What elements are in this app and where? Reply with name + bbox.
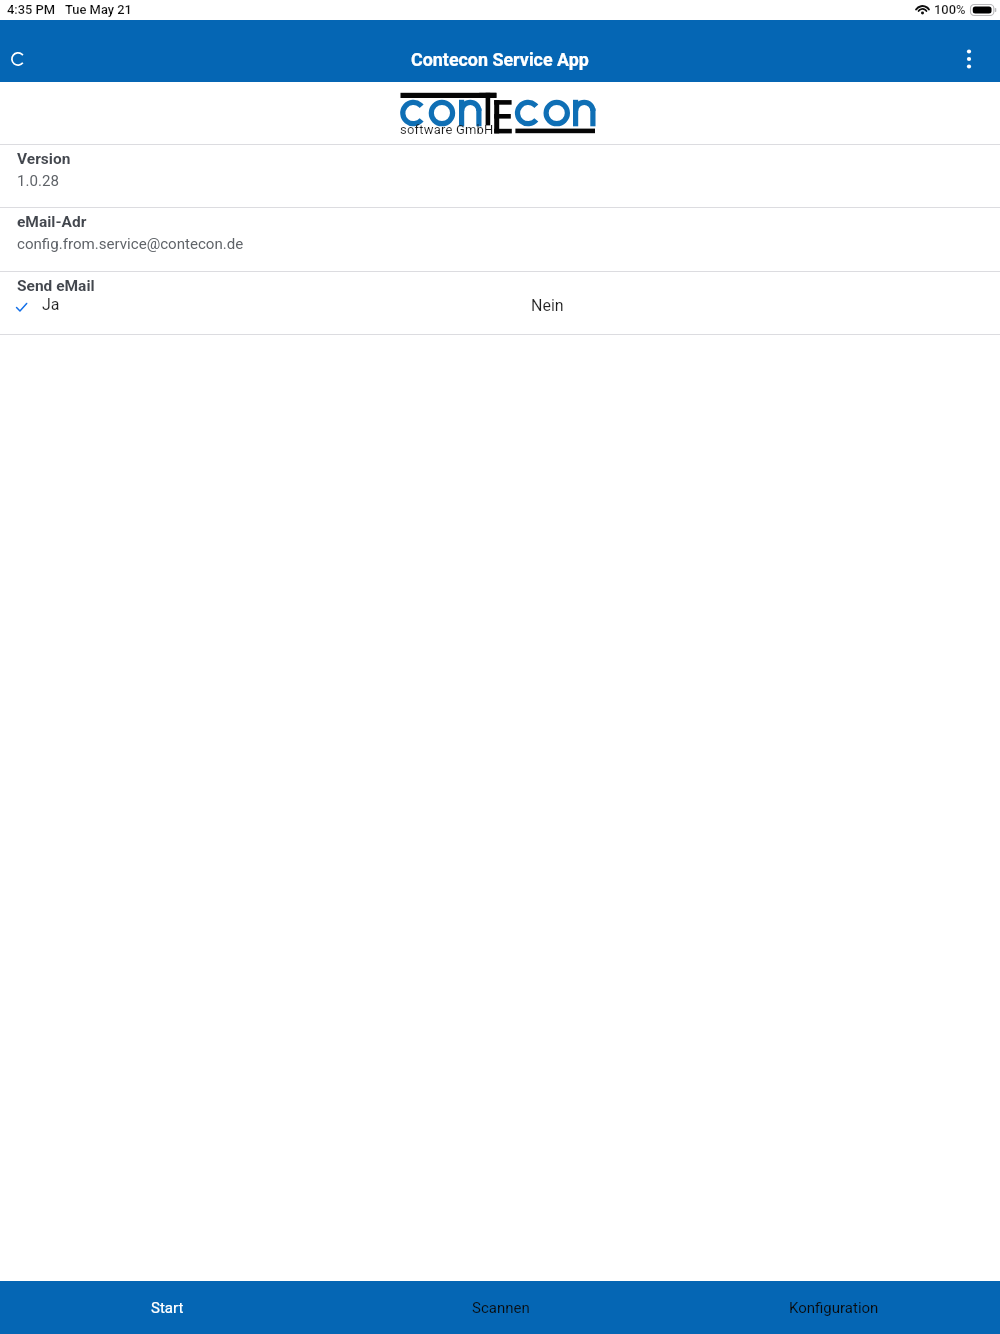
staticText: Nein: [531, 296, 564, 315]
button[interactable]: Konfiguration: [667, 1281, 1000, 1334]
staticText: eMail-Adr: [17, 213, 87, 231]
staticText: 1.0.28: [17, 172, 59, 190]
staticText: Contecon Service App: [411, 49, 589, 70]
button[interactable]: Version: [0, 145, 1000, 207]
staticText: Tue May 21: [65, 2, 132, 17]
button[interactable]: Start: [0, 1281, 334, 1334]
staticText: Start: [151, 1299, 184, 1317]
staticText: Scannen: [472, 1299, 530, 1317]
button[interactable]: Scannen: [334, 1281, 667, 1334]
staticText: software GmbH: [400, 122, 494, 137]
button[interactable]: More options: [952, 42, 986, 76]
staticText: Konfiguration: [789, 1299, 879, 1317]
staticText: Ja: [42, 295, 60, 314]
staticText: Send eMail: [17, 277, 95, 295]
button[interactable]: eMail-Adr: [0, 208, 1000, 271]
button[interactable]: Refresh: [1, 42, 35, 76]
button[interactable]: Ja: [10, 291, 100, 317]
staticText: 100%: [934, 2, 966, 17]
button[interactable]: Nein: [524, 292, 614, 318]
staticText: 4:35 PM: [7, 2, 56, 17]
staticText: Version: [17, 150, 71, 168]
staticText: config.from.service@contecon.de: [17, 235, 244, 253]
